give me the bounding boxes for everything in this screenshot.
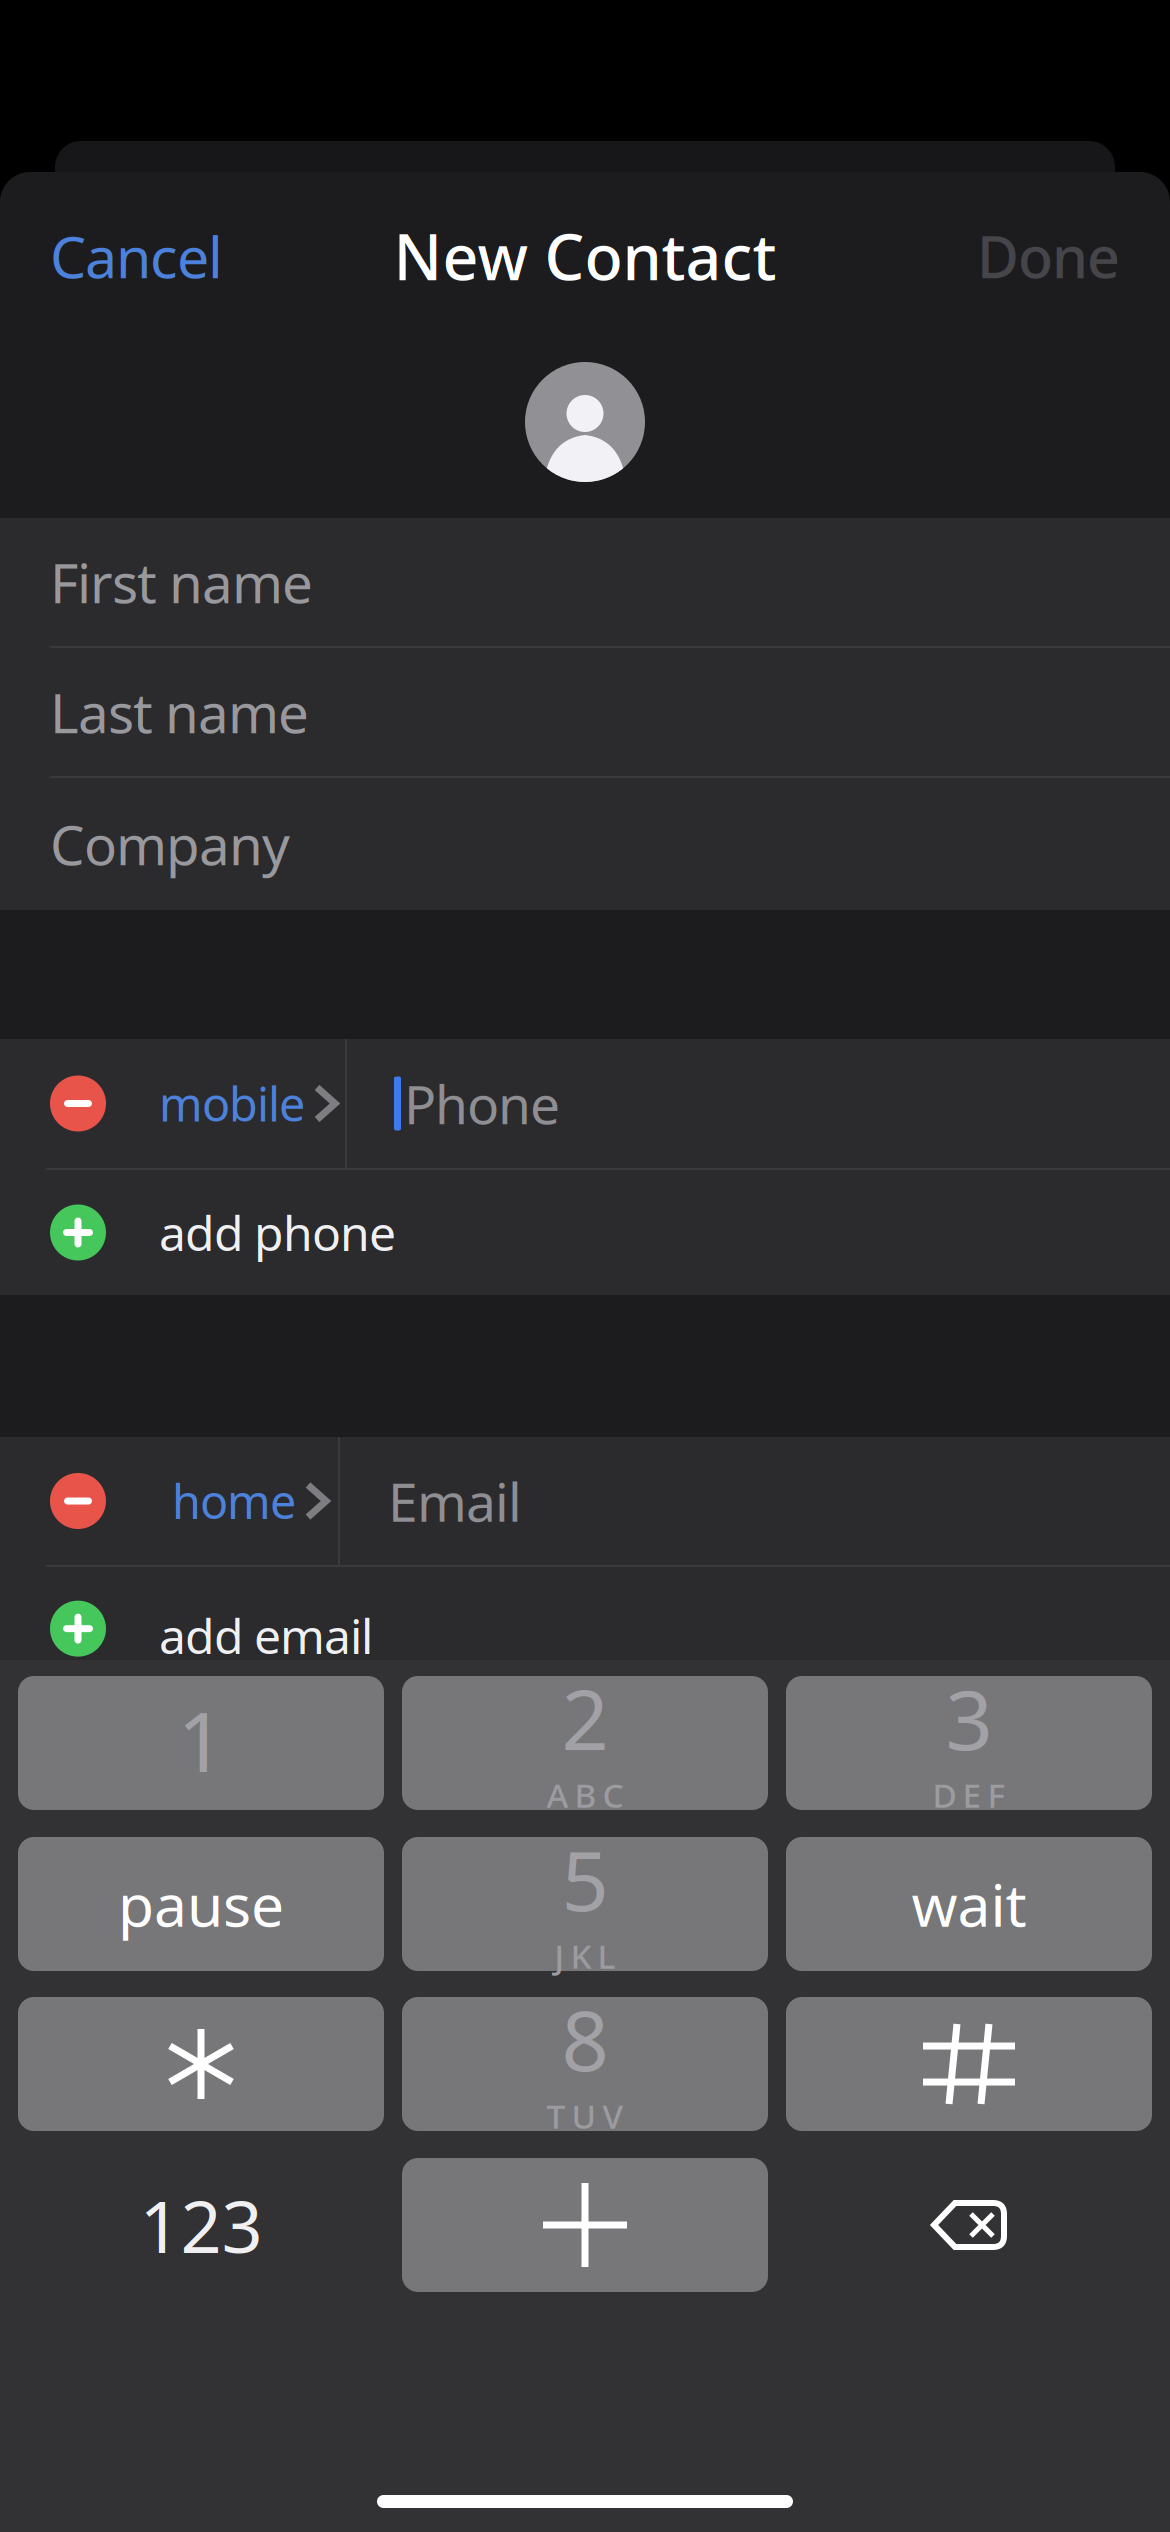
staticText: Company <box>50 808 290 880</box>
staticText: 3 <box>945 1663 992 1773</box>
button[interactable]: mobile <box>0 1039 344 1168</box>
staticText: First name <box>50 546 313 618</box>
button[interactable]: pause <box>18 1837 384 1971</box>
button[interactable] <box>18 1997 384 2131</box>
staticText: 1 <box>177 1685 224 1795</box>
staticText: Cancel <box>50 218 223 294</box>
button[interactable] <box>786 2158 1152 2292</box>
staticText: Last name <box>50 676 309 748</box>
button[interactable]: 123 <box>18 2158 384 2292</box>
button[interactable]: 8 <box>402 1997 768 2131</box>
staticText: Email <box>388 1466 522 1536</box>
staticText: home <box>172 1470 296 1532</box>
staticText: Phone <box>404 1068 560 1139</box>
staticText: add phone <box>159 1201 396 1264</box>
button[interactable] <box>525 362 645 482</box>
button[interactable]: 2 <box>402 1676 768 1810</box>
button[interactable]: Company <box>0 778 1170 910</box>
staticText: pause <box>118 1865 284 1943</box>
staticText: 2 <box>561 1663 608 1773</box>
button[interactable]: add phone <box>0 1170 1170 1295</box>
button[interactable]: wait <box>786 1837 1152 1971</box>
button[interactable]: 5 <box>402 1837 768 1971</box>
staticText: mobile <box>159 1072 305 1134</box>
staticText: JKL <box>554 1934 615 1978</box>
staticText: 5 <box>561 1824 608 1934</box>
button[interactable]: add email <box>0 1567 1170 1660</box>
staticText: New Contact <box>393 214 776 298</box>
button[interactable]: Last name <box>0 648 1170 776</box>
staticText: TUV <box>546 2094 623 2138</box>
button[interactable] <box>402 2158 768 2292</box>
staticText: DEF <box>932 1773 1005 1817</box>
staticText: add email <box>159 1604 373 1667</box>
staticText: wait <box>911 1865 1026 1943</box>
button[interactable]: home <box>0 1437 337 1565</box>
button[interactable]: Phone <box>347 1039 1170 1168</box>
button[interactable]: 3 <box>786 1676 1152 1810</box>
button[interactable] <box>786 1997 1152 2131</box>
staticText: Done <box>977 218 1120 294</box>
button[interactable]: Done <box>977 218 1120 294</box>
staticText: 123 <box>139 2177 262 2273</box>
staticText: ABC <box>546 1773 623 1817</box>
button[interactable]: First name <box>0 518 1170 646</box>
button[interactable]: Cancel <box>50 218 223 294</box>
button[interactable]: 1 <box>18 1676 384 1810</box>
staticText: 8 <box>561 1984 608 2094</box>
button[interactable]: Email <box>340 1437 1170 1565</box>
